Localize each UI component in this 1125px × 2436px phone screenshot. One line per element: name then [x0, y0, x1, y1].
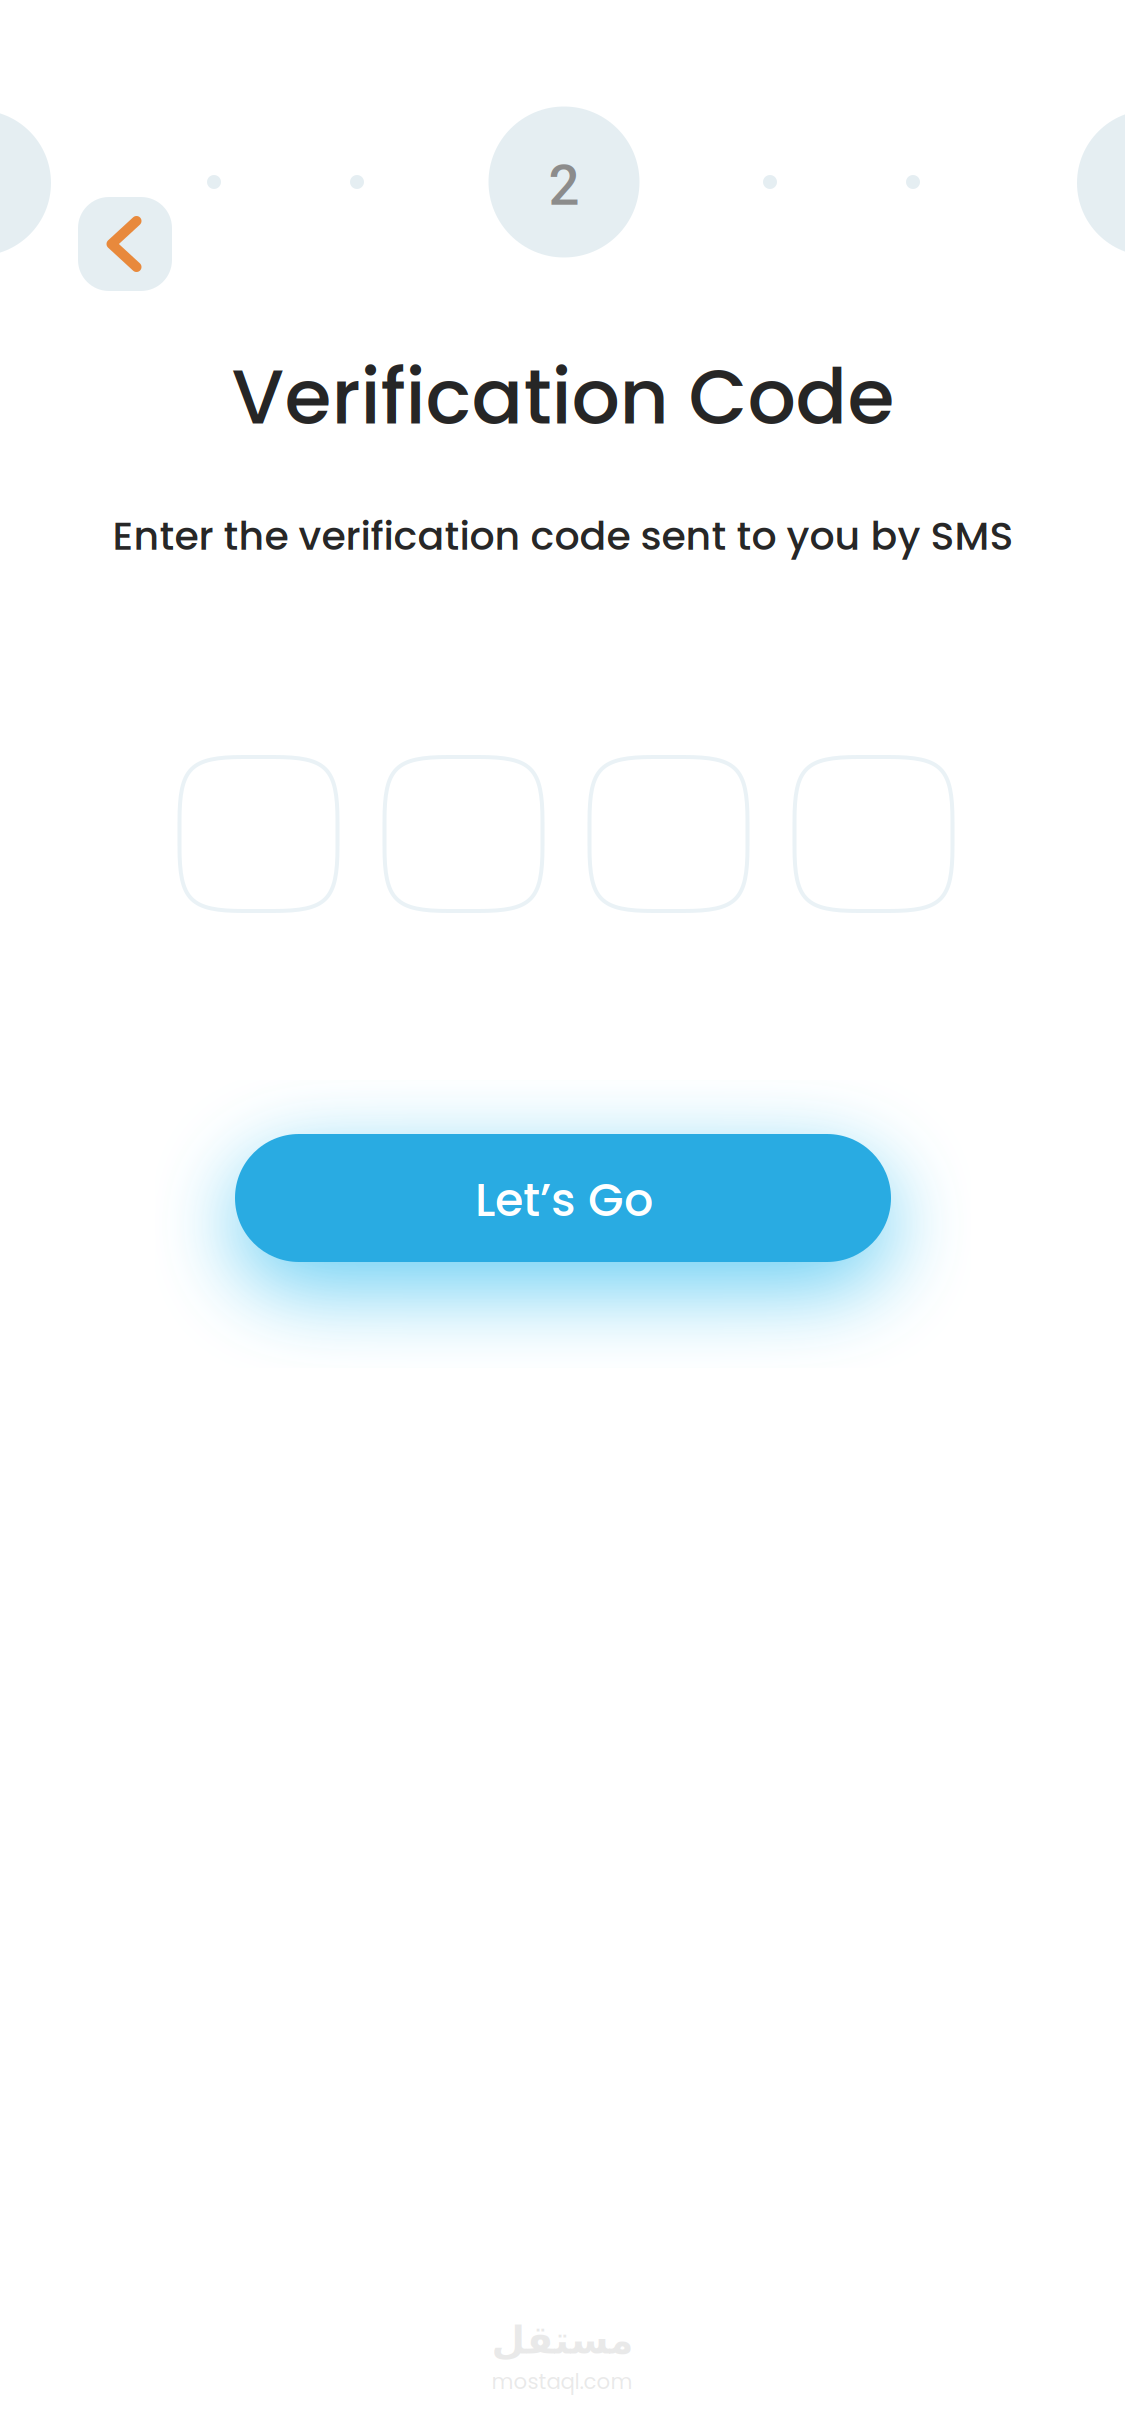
button[interactable]: Verification code digit 1 — [179, 757, 337, 911]
button[interactable]: Verification code digit 3 — [589, 757, 747, 911]
staticText: مستقل — [491, 2318, 633, 2363]
button[interactable]: Verification code digit 2 — [384, 757, 542, 911]
staticText: Verification Code — [231, 344, 894, 450]
staticText: mostaql.com — [491, 2367, 632, 2396]
button[interactable]: Let’s Go — [235, 1134, 891, 1262]
button[interactable]: Verification code digit 4 — [794, 757, 952, 911]
staticText: Enter the verification code sent to you … — [112, 508, 1013, 564]
staticText: Let’s Go — [475, 1168, 653, 1232]
button[interactable]: Back — [78, 197, 172, 291]
staticText: 2 — [548, 154, 579, 218]
